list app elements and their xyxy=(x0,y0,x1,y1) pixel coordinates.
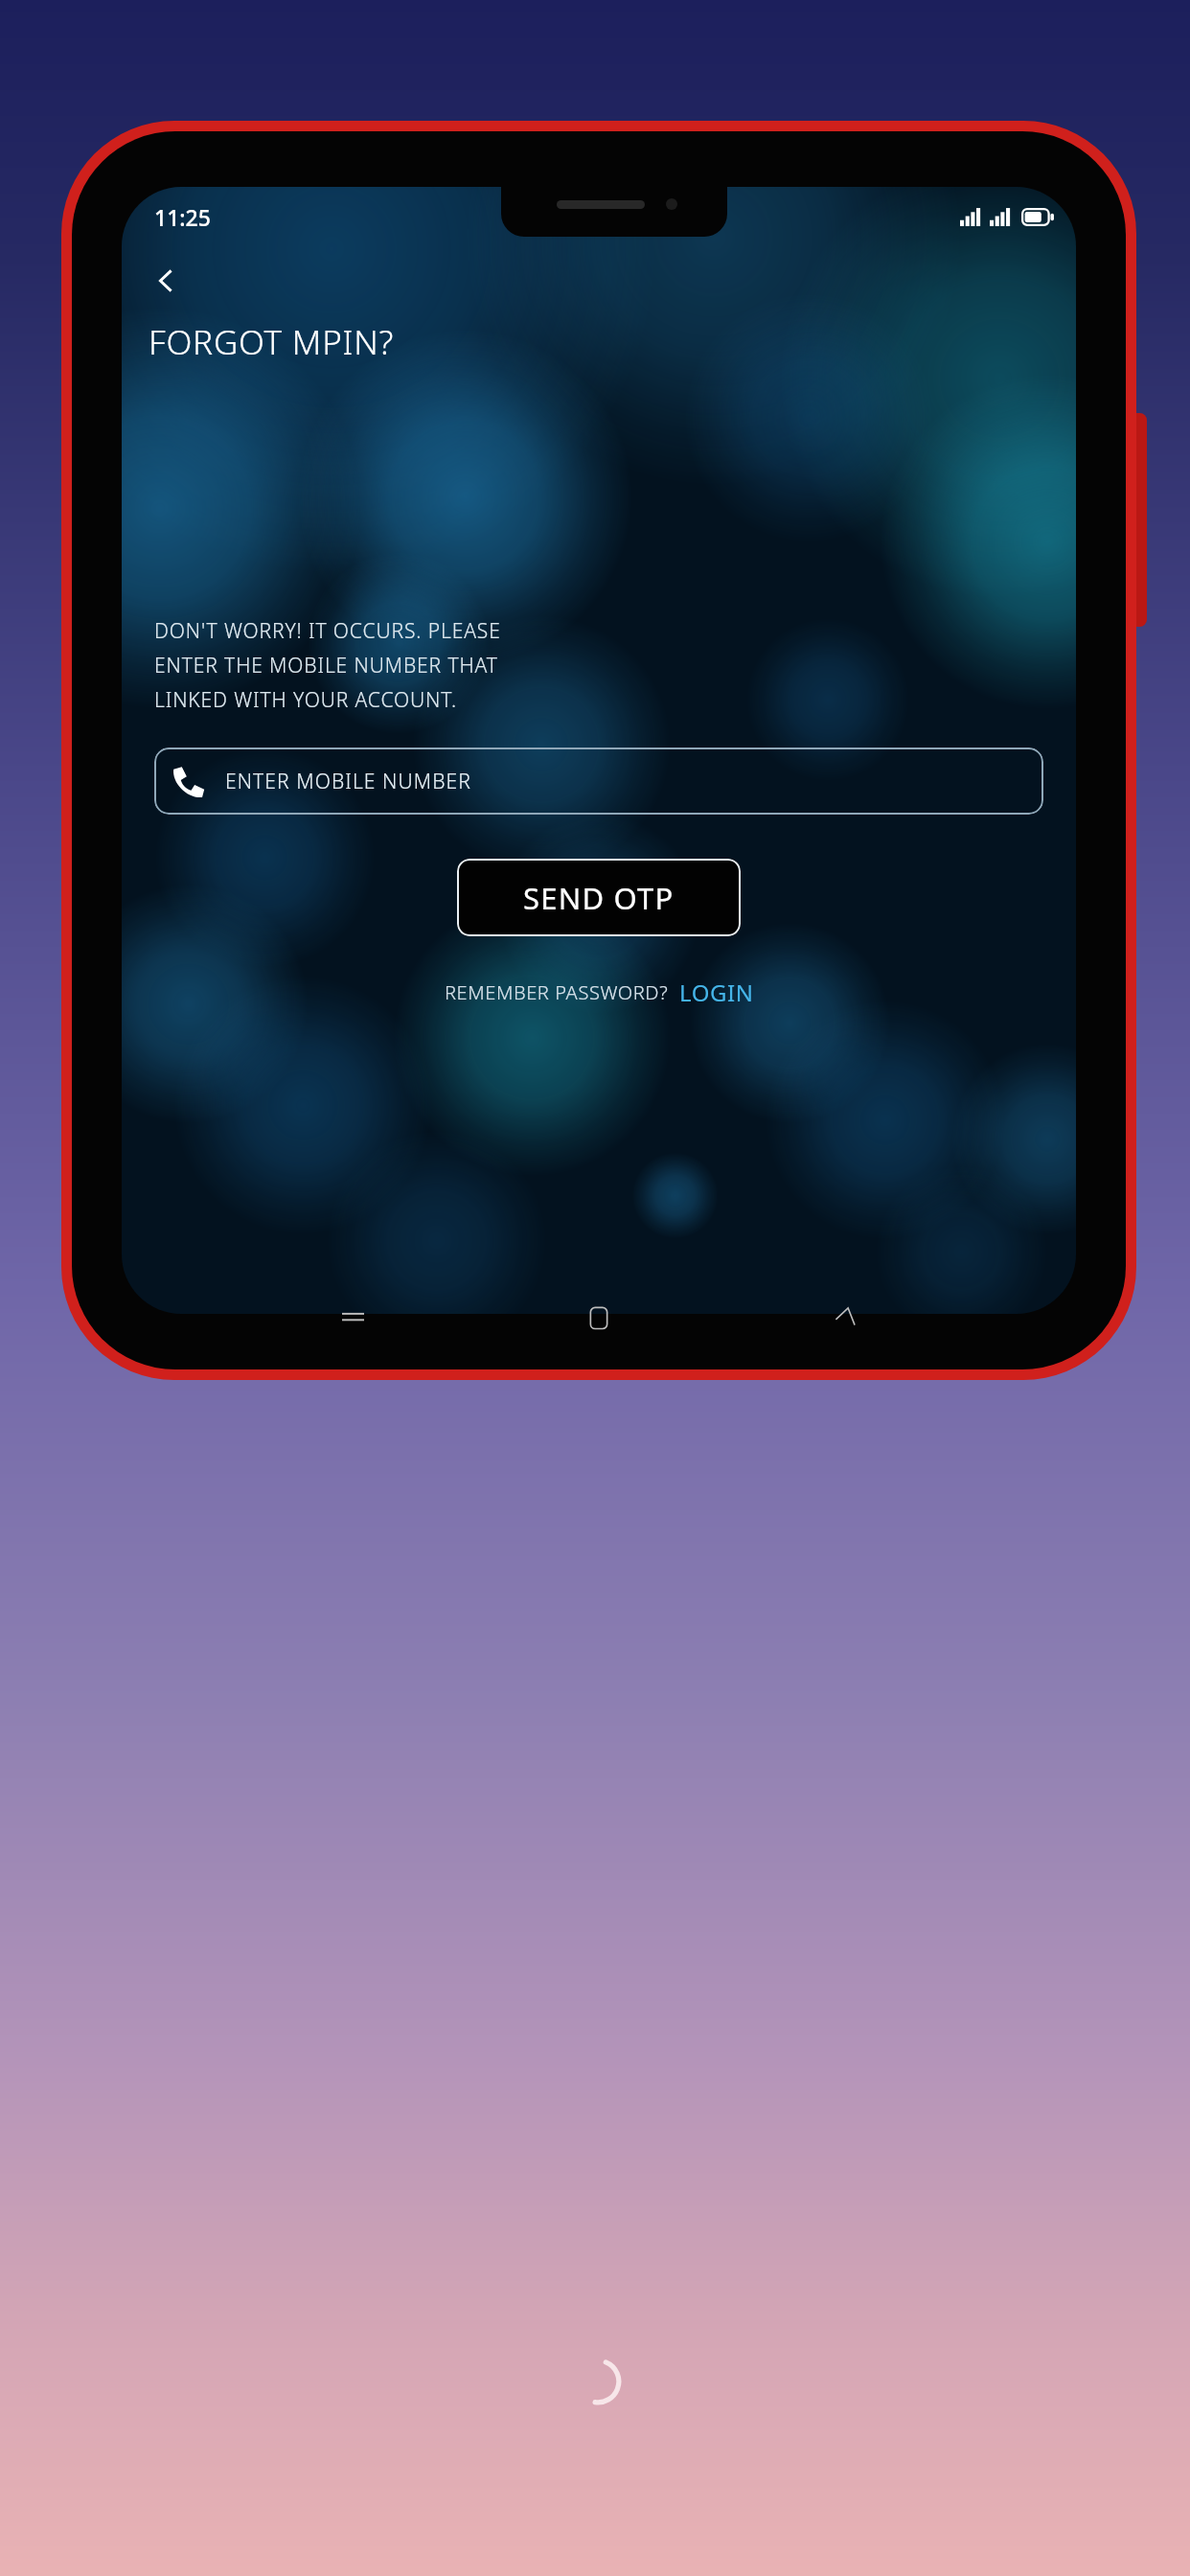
button[interactable]: Recents xyxy=(328,1292,378,1342)
button[interactable]: Home xyxy=(574,1292,624,1342)
button[interactable]: Back xyxy=(143,258,189,304)
button[interactable]: Back xyxy=(820,1292,870,1342)
staticText: REMEMBER PASSWORD? xyxy=(445,979,669,1005)
button[interactable]: ENTER MOBILE NUMBER xyxy=(154,747,1043,815)
staticText: FORGOT MPIN? xyxy=(149,319,395,365)
staticText: SEND OTP xyxy=(523,878,675,918)
staticText: 11:25 xyxy=(154,202,211,232)
staticText: DON'T WORRY! IT OCCURS. PLEASE ENTER THE… xyxy=(154,617,501,713)
staticText: LOGIN xyxy=(679,977,754,1008)
staticText: ENTER MOBILE NUMBER xyxy=(225,768,471,795)
button[interactable]: REMEMBER PASSWORD? xyxy=(439,973,760,1012)
button[interactable]: SEND OTP xyxy=(457,859,741,936)
